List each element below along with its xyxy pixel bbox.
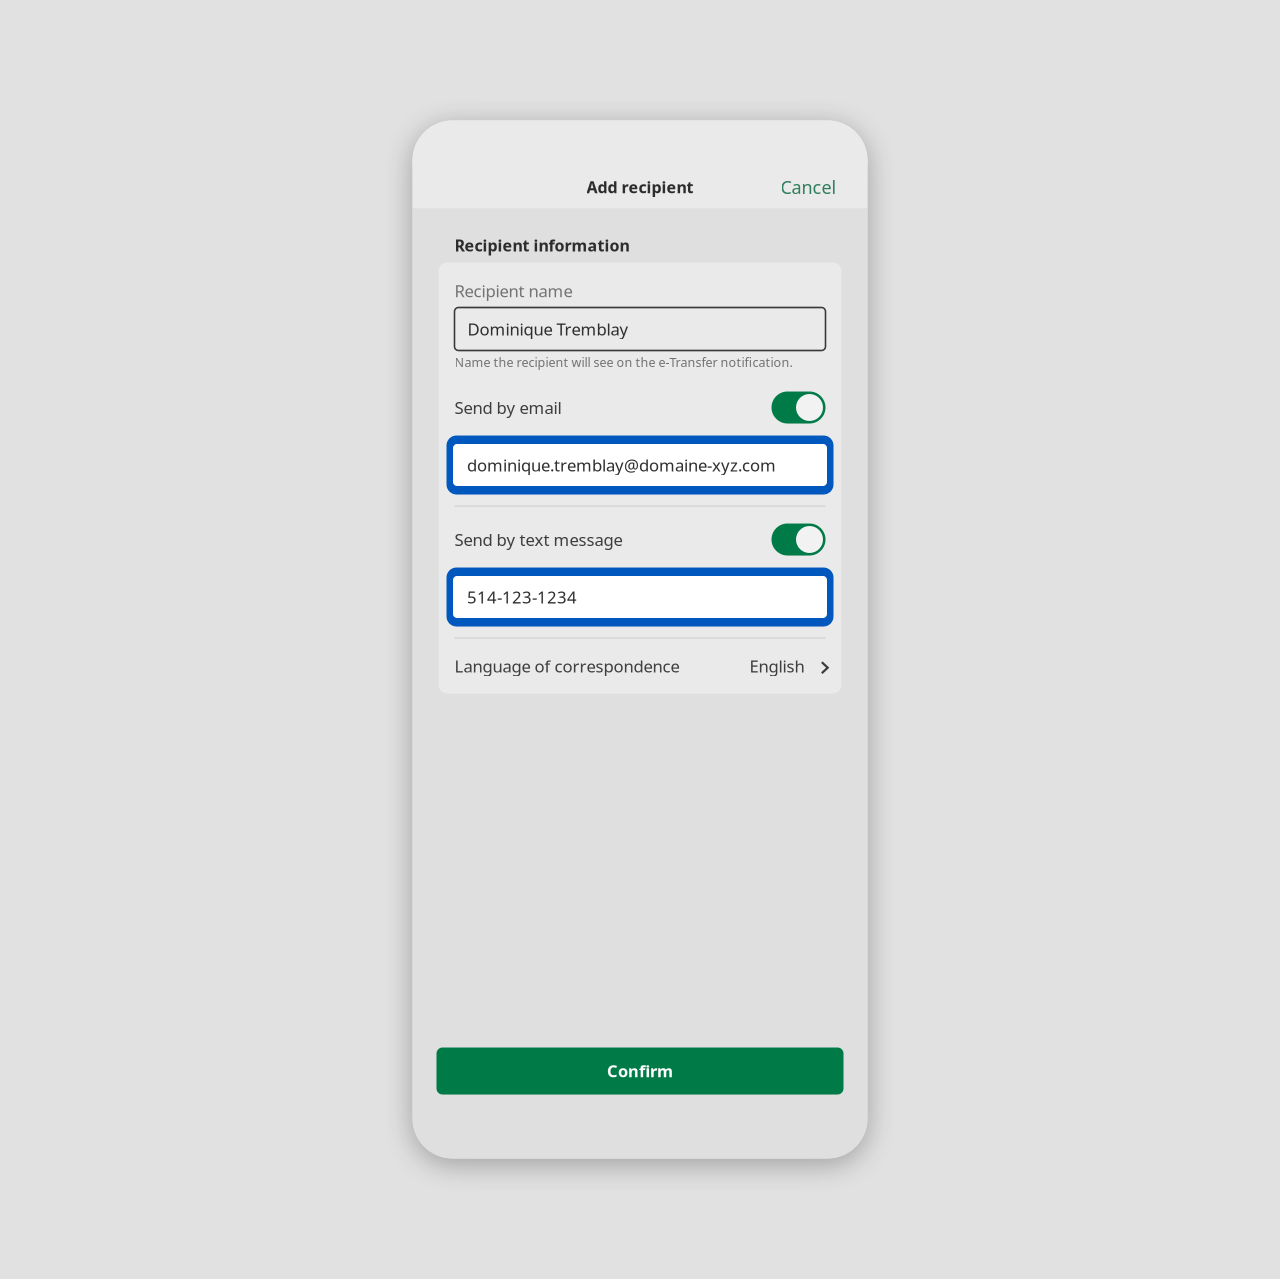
staticText: Cancel (780, 175, 836, 199)
staticText: Language of correspondence (454, 655, 679, 677)
staticText: Recipient name (454, 279, 572, 302)
staticText: English (749, 655, 804, 677)
button[interactable]: Cancel (772, 166, 844, 208)
staticText: Send by email (454, 396, 561, 419)
button[interactable]: Confirm (436, 1047, 843, 1094)
staticText: Recipient information (454, 234, 629, 256)
button[interactable]: Send by text message (454, 523, 825, 555)
staticText: dominique.tremblay@domaine-xyz.com (467, 454, 776, 476)
staticText: 514-123-1234 (467, 586, 577, 608)
staticText: Confirm (607, 1060, 673, 1082)
button[interactable]: Send by email (454, 391, 825, 423)
staticText: Dominique Tremblay (467, 318, 628, 340)
staticText: Add recipient (586, 176, 693, 198)
staticText: Name the recipient will see on the e-Tra… (454, 353, 792, 371)
staticText: Send by text message (454, 528, 622, 551)
button[interactable]: Language of correspondence (454, 638, 825, 693)
